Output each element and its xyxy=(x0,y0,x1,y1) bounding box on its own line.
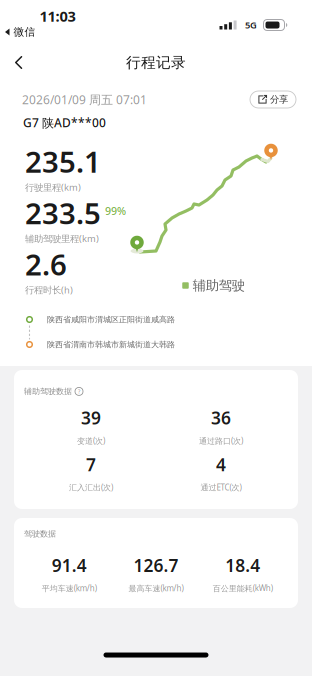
staticText: 辅助驾驶数据 xyxy=(24,386,72,396)
button[interactable]: 辅助驾驶数据说明 xyxy=(75,387,83,395)
staticText: 91.4 xyxy=(52,554,87,577)
staticText: 行程记录 xyxy=(126,53,186,71)
staticText: 4 xyxy=(216,453,226,476)
staticText: 235.1 xyxy=(25,142,101,181)
staticText: ? xyxy=(78,388,80,395)
staticText: 18.4 xyxy=(225,554,260,577)
staticText: 2026/01/09 周五 07:01 xyxy=(22,91,147,107)
staticText: 辅助驾驶里程(km) xyxy=(25,232,99,245)
staticText: 39 xyxy=(81,406,101,429)
staticText: 辅助驾驶 xyxy=(193,277,245,294)
staticText: 百公里能耗(kWh) xyxy=(213,583,273,593)
button[interactable]: 返回 xyxy=(5,46,33,79)
staticText: 最高车速(km/h) xyxy=(128,583,183,593)
staticText: 通过ETC(次) xyxy=(200,482,241,493)
staticText: 11:03 xyxy=(39,6,75,26)
staticText: 陕西省渭南市韩城市新城街道大韩路 xyxy=(47,340,175,349)
staticText: 5G xyxy=(245,19,257,31)
staticText: 汇入汇出(次) xyxy=(69,482,113,493)
staticText: 36 xyxy=(211,406,231,429)
staticText: 126.7 xyxy=(133,554,178,577)
button[interactable]: 返回微信 xyxy=(4,25,35,38)
staticText: 分享 xyxy=(270,94,288,105)
staticText: 通过路口(次) xyxy=(199,435,243,446)
staticText: 驾驶数据 xyxy=(24,529,56,539)
button[interactable]: 分享 xyxy=(250,91,296,108)
staticText: 2.6 xyxy=(25,245,67,284)
staticText: G7 陕AD***00 xyxy=(23,114,106,130)
staticText: 行程时长(h) xyxy=(25,284,73,296)
staticText: 99% xyxy=(105,204,126,218)
staticText: 行驶里程(km) xyxy=(25,181,81,193)
staticText: 7 xyxy=(86,453,96,476)
staticText: 平均车速(km/h) xyxy=(42,583,97,593)
staticText: 微信 xyxy=(13,25,35,38)
staticText: 陕西省咸阳市渭城区正阳街道咸高路 xyxy=(47,315,175,324)
staticText: 变道(次) xyxy=(77,435,105,446)
staticText: 233.5 xyxy=(25,193,101,232)
